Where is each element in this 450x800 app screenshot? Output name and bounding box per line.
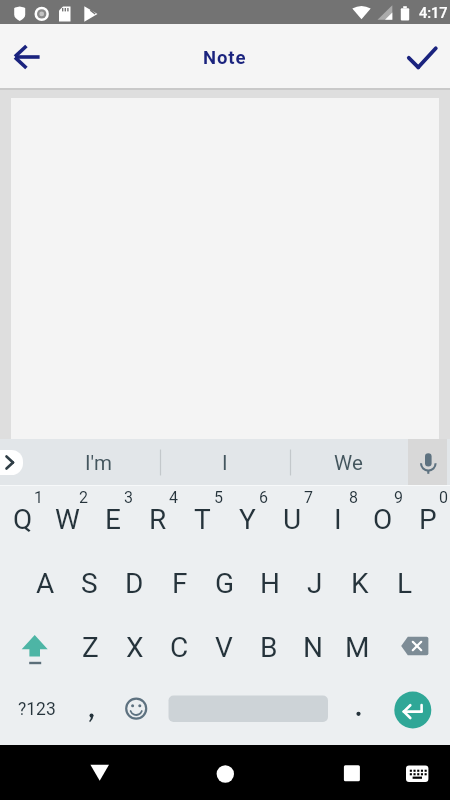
staticText: C (170, 631, 189, 664)
staticText: 6 (259, 488, 268, 507)
button[interactable] (408, 439, 447, 485)
button[interactable] (114, 688, 159, 733)
staticText: R (149, 503, 167, 536)
staticText: 5 (214, 488, 223, 507)
button[interactable]: I (315, 487, 360, 551)
staticText: 8 (349, 488, 358, 507)
button[interactable]: M (335, 615, 380, 679)
staticText: Z (82, 631, 99, 664)
button[interactable]: ?123 (9, 689, 64, 729)
staticText: B (260, 631, 278, 664)
staticText: U (283, 503, 302, 536)
button[interactable]: I (170, 440, 280, 486)
button[interactable] (400, 35, 444, 79)
button[interactable]: F (157, 551, 202, 615)
button[interactable]: W (45, 487, 90, 551)
staticText: 2 (79, 488, 88, 507)
button[interactable]: P (405, 487, 450, 551)
button[interactable]: Q (0, 487, 45, 551)
button[interactable]: We (298, 440, 398, 486)
staticText: 0 (439, 488, 448, 507)
staticText: G (215, 567, 235, 600)
staticText: 4 (169, 488, 178, 507)
staticText: H (260, 567, 280, 600)
staticText: Q (13, 503, 33, 536)
staticText: D (125, 567, 144, 600)
staticText: We (334, 451, 363, 475)
button[interactable]: C (157, 615, 202, 679)
button[interactable]: B (246, 615, 291, 679)
button[interactable]: V (201, 615, 246, 679)
button[interactable]: J (292, 551, 337, 615)
staticText: L (397, 567, 413, 600)
button[interactable] (386, 620, 444, 674)
button[interactable] (393, 690, 433, 730)
button[interactable]: L (382, 551, 427, 615)
staticText: S (81, 567, 98, 600)
button[interactable] (6, 620, 64, 674)
button[interactable] (398, 750, 444, 796)
button[interactable]: S (67, 551, 112, 615)
staticText: 3 (124, 488, 133, 507)
staticText: Y (239, 503, 256, 536)
staticText: I (334, 503, 342, 536)
staticText: 9 (394, 488, 403, 507)
button[interactable]: R (135, 487, 180, 551)
staticText: V (215, 631, 233, 664)
button[interactable]: O (360, 487, 405, 551)
button[interactable]: N (290, 615, 335, 679)
staticText: X (126, 631, 144, 664)
button[interactable]: K (337, 551, 382, 615)
staticText: W (55, 503, 80, 536)
staticText: I'm (85, 451, 112, 475)
staticText: P (419, 503, 437, 536)
staticText: T (194, 503, 211, 536)
button[interactable]: Z (68, 615, 113, 679)
staticText: Note (203, 47, 247, 69)
button[interactable] (6, 33, 50, 77)
button[interactable] (0, 450, 23, 475)
staticText: ?123 (18, 699, 56, 720)
button[interactable]: G (202, 551, 247, 615)
button[interactable]: D (112, 551, 157, 615)
staticText: 7 (304, 488, 313, 507)
button[interactable] (71, 688, 113, 733)
button[interactable]: I'm (43, 440, 153, 486)
staticText: K (351, 567, 369, 600)
button[interactable]: H (247, 551, 292, 615)
staticText: M (345, 631, 370, 664)
staticText: N (303, 631, 323, 664)
button[interactable]: A (23, 551, 68, 615)
staticText: A (36, 567, 55, 600)
button[interactable]: Y (225, 487, 270, 551)
staticText: J (307, 567, 323, 600)
button[interactable] (75, 750, 121, 796)
staticText: 1 (34, 488, 43, 507)
staticText: E (105, 503, 121, 536)
staticText: 4:17 (419, 5, 448, 22)
button[interactable]: E (90, 487, 135, 551)
button[interactable]: U (270, 487, 315, 551)
button[interactable] (336, 688, 381, 733)
button[interactable]: X (112, 615, 157, 679)
button[interactable] (202, 750, 248, 796)
button[interactable]: T (180, 487, 225, 551)
staticText: I (222, 451, 228, 475)
button[interactable] (168, 695, 328, 723)
staticText: O (373, 503, 393, 536)
button[interactable] (329, 750, 375, 796)
staticText: F (172, 567, 188, 600)
